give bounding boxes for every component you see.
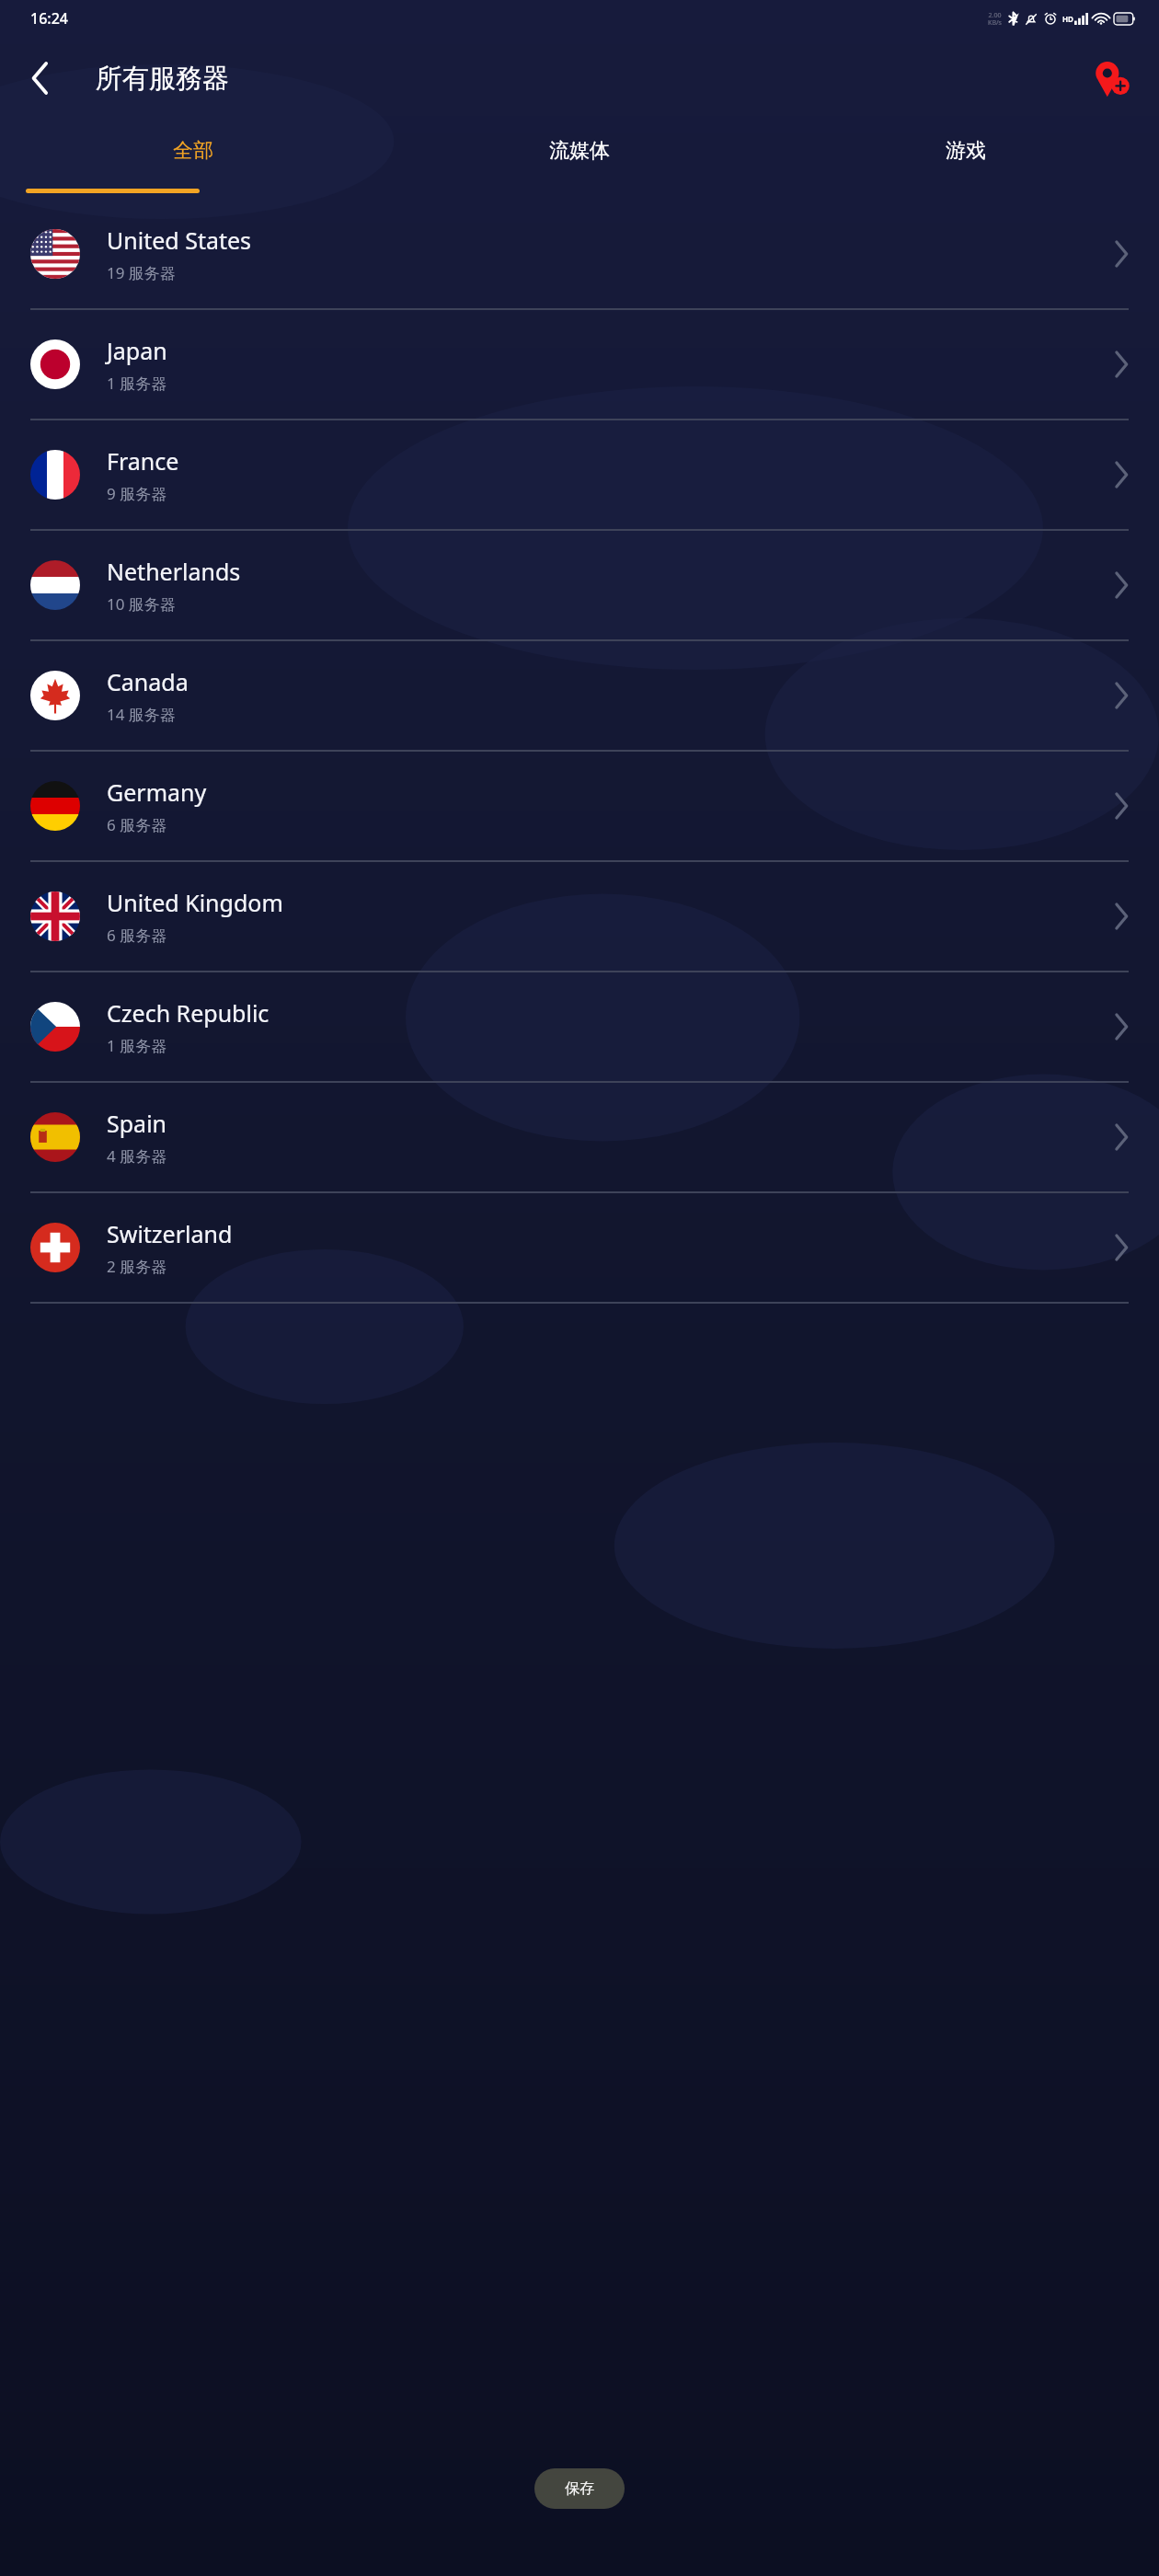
staticText: HD	[1062, 14, 1073, 24]
staticText: 9 服务器	[107, 483, 167, 504]
staticText: 2 服务器	[107, 1256, 167, 1277]
staticText: 1 服务器	[107, 373, 167, 394]
staticText: 6 服务器	[107, 814, 167, 835]
button[interactable]: United Kingdom	[0, 862, 1159, 972]
staticText: 6 服务器	[107, 925, 167, 946]
staticText: 19 服务器	[107, 262, 176, 283]
button[interactable]: United States	[0, 200, 1159, 310]
staticText: 4 服务器	[107, 1145, 167, 1167]
staticText: 流媒体	[549, 138, 610, 164]
staticText: Czech Republic	[107, 997, 270, 1029]
button[interactable]: Canada	[0, 641, 1159, 752]
staticText: 10 服务器	[107, 593, 176, 615]
button[interactable]: 流媒体	[386, 120, 773, 181]
button[interactable]: France	[0, 420, 1159, 531]
button[interactable]: Add server location	[1084, 51, 1139, 106]
staticText: 1 服务器	[107, 1035, 167, 1056]
staticText: 16:24	[30, 8, 68, 29]
staticText: 全部	[173, 138, 213, 164]
staticText: 所有服務器	[96, 62, 229, 96]
button[interactable]: Switzerland	[0, 1193, 1159, 1304]
staticText: United Kingdom	[107, 887, 283, 918]
staticText: 2.00 KB/s	[988, 11, 1002, 27]
staticText: 游戏	[946, 138, 986, 164]
staticText: Canada	[107, 666, 189, 697]
button[interactable]: 游戏	[773, 120, 1159, 181]
button[interactable]: Germany	[0, 752, 1159, 862]
staticText: United States	[107, 224, 252, 256]
button[interactable]: Japan	[0, 310, 1159, 420]
staticText: Switzerland	[107, 1218, 233, 1249]
button[interactable]: Netherlands	[0, 531, 1159, 641]
button[interactable]: Spain	[0, 1083, 1159, 1193]
button[interactable]: Back	[17, 54, 64, 102]
staticText: Netherlands	[107, 556, 241, 587]
staticText: Japan	[107, 335, 167, 366]
staticText: Germany	[107, 776, 207, 808]
staticText: 14 服务器	[107, 704, 176, 725]
staticText: Spain	[107, 1108, 167, 1139]
button[interactable]: Czech Republic	[0, 972, 1159, 1083]
button[interactable]: 保存	[534, 2468, 625, 2509]
staticText: France	[107, 445, 179, 477]
button[interactable]: 全部	[0, 120, 386, 181]
staticText: 保存	[565, 2479, 594, 2498]
